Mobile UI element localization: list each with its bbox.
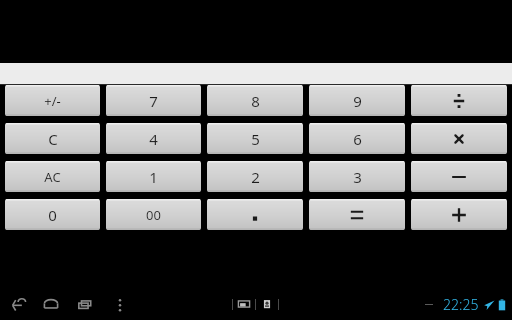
staticText: 00 (146, 206, 161, 224)
button[interactable]: Back (6, 293, 28, 315)
button[interactable]: 00 (106, 199, 201, 230)
button[interactable]: C (5, 123, 100, 154)
button[interactable]: 7 (106, 85, 201, 116)
button[interactable] (411, 199, 507, 230)
button[interactable]: More options (110, 294, 130, 314)
button[interactable]: 4 (106, 123, 201, 154)
staticText: 8 (251, 91, 260, 111)
button[interactable] (411, 123, 507, 154)
staticText: 9 (353, 91, 362, 111)
staticText: 0 (48, 205, 57, 225)
staticText: +/- (44, 92, 61, 110)
staticText: 1 (149, 167, 158, 187)
button[interactable]: 2 (207, 161, 303, 192)
button[interactable] (207, 199, 303, 230)
button[interactable] (309, 199, 405, 230)
staticText: 6 (353, 129, 362, 149)
button[interactable]: Recent apps (74, 293, 96, 315)
button[interactable]: +/- (5, 85, 100, 116)
button[interactable]: 3 (309, 161, 405, 192)
staticText: C (48, 129, 58, 149)
staticText: AC (44, 168, 61, 186)
staticText: 7 (149, 91, 158, 111)
button[interactable]: 5 (207, 123, 303, 154)
staticText: 5 (251, 129, 260, 149)
button[interactable]: Home (40, 293, 62, 315)
staticText: 4 (149, 129, 158, 149)
staticText: 22:25 (443, 295, 479, 314)
button[interactable]: AC (5, 161, 100, 192)
button[interactable]: 1 (106, 161, 201, 192)
button[interactable]: 6 (309, 123, 405, 154)
button[interactable] (411, 161, 507, 192)
button[interactable] (411, 85, 507, 116)
button[interactable]: 0 (5, 199, 100, 230)
button[interactable]: 8 (207, 85, 303, 116)
staticText: 3 (353, 167, 362, 187)
staticText: 2 (251, 167, 260, 187)
button[interactable]: 9 (309, 85, 405, 116)
